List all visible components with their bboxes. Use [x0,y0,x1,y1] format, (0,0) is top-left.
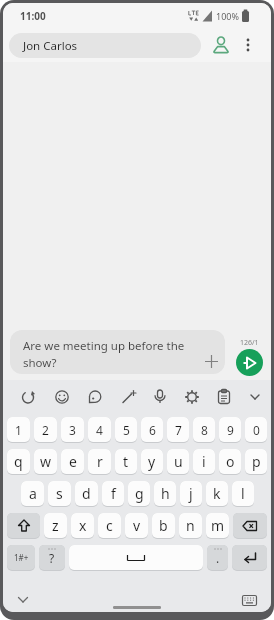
button[interactable]: d [75,481,98,506]
staticText: g [135,484,144,503]
staticText: r [97,452,103,471]
button[interactable]: 6 [141,417,163,442]
staticText: p [252,452,261,471]
button[interactable] [7,513,40,538]
button[interactable] [113,606,161,609]
staticText: 2 [42,422,49,438]
button[interactable] [217,388,231,406]
staticText: 1#+ [14,552,29,563]
button[interactable]: l [232,481,254,506]
staticText: d [82,484,91,503]
button[interactable]: z [44,513,67,538]
staticText: q [14,452,23,471]
staticText: t [123,452,129,471]
staticText: z [52,516,59,535]
staticText: Are we meeting up before the show? [23,338,185,370]
staticText: b [159,516,168,535]
button[interactable]: k [206,481,228,506]
staticText: 9 [227,422,234,438]
button[interactable]: 1 [7,417,30,442]
staticText: k [213,484,221,503]
button[interactable]: 1#+ [7,545,35,570]
button[interactable]: e [61,449,84,474]
button[interactable]: . [207,545,228,570]
staticText: 0 [253,422,260,438]
staticText: a [29,484,37,503]
button[interactable]: a [21,481,44,506]
button[interactable] [184,388,200,406]
button[interactable] [238,35,258,55]
staticText: 3 [69,422,76,438]
staticText: c [106,516,113,535]
button[interactable] [232,545,267,570]
staticText: 1 [15,422,22,438]
staticText: 7 [175,422,182,438]
button[interactable]: m [206,513,229,538]
staticText: 100% [216,10,239,22]
staticText: n [186,516,195,535]
button[interactable]: Jon Carlos [9,33,201,58]
button[interactable]: i [193,449,215,474]
staticText: e [69,452,77,471]
button[interactable]: t [115,449,137,474]
button[interactable]: f [102,481,124,506]
staticText: 4 [96,422,103,438]
button[interactable]: 8 [193,417,215,442]
staticText: 8 [201,422,208,438]
staticText: ? [49,550,55,566]
button[interactable]: u [167,449,189,474]
button[interactable] [249,388,261,406]
staticText: u [174,452,183,471]
staticText: s [56,484,63,503]
button[interactable] [233,513,267,538]
button[interactable] [87,388,103,406]
staticText: . [216,550,220,566]
staticText: l [241,484,245,503]
staticText: Jon Carlos [23,38,78,54]
staticText: x [79,516,87,535]
button[interactable]: c [98,513,121,538]
button[interactable]: r [88,449,111,474]
staticText: v [133,516,141,535]
staticText: 5 [123,422,130,438]
button[interactable]: p [245,449,267,474]
staticText: m [211,516,225,535]
button[interactable]: 3 [61,417,84,442]
button[interactable]: 0 [245,417,267,442]
staticText: o [226,452,235,471]
button[interactable] [15,592,31,608]
button[interactable] [240,591,258,609]
button[interactable]: y [141,449,163,474]
button[interactable] [154,388,166,406]
button[interactable] [208,32,234,58]
button[interactable] [121,388,137,406]
button[interactable]: n [179,513,202,538]
staticText: w [40,452,52,471]
staticText: i [202,452,206,471]
button[interactable]: 5 [115,417,137,442]
button[interactable]: w [34,449,57,474]
button[interactable]: s [48,481,71,506]
button[interactable]: 9 [219,417,241,442]
button[interactable]: o [219,449,241,474]
button[interactable]: v [125,513,148,538]
button[interactable] [54,388,70,406]
staticText: j [189,484,193,503]
staticText: h [161,484,170,503]
button[interactable]: q [7,449,30,474]
button[interactable]: x [71,513,94,538]
button[interactable]: 4 [88,417,111,442]
staticText: 6 [149,422,156,438]
button[interactable]: ? [39,545,65,570]
button[interactable] [69,545,203,570]
button[interactable]: g [128,481,150,506]
button[interactable]: 2 [34,417,57,442]
button[interactable]: Are we meeting up before the show? [10,330,225,374]
button[interactable]: j [180,481,202,506]
button[interactable]: 7 [167,417,189,442]
button[interactable]: b [152,513,175,538]
button[interactable] [236,349,263,376]
button[interactable]: h [154,481,176,506]
staticText: y [148,452,156,471]
button[interactable] [20,388,36,406]
